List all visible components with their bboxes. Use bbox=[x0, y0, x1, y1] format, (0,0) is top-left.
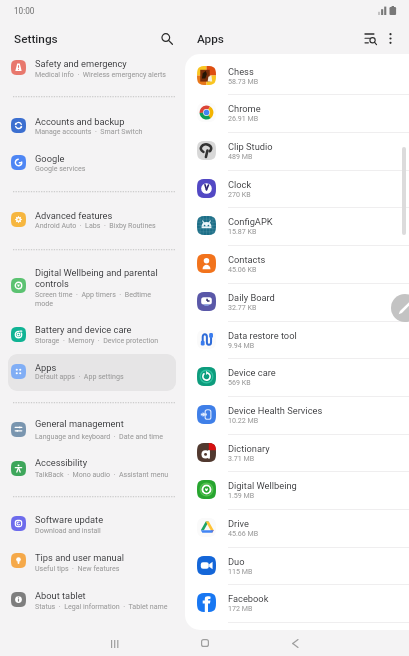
staticText: 58.73 MB bbox=[228, 77, 259, 85]
button[interactable]: Chrome bbox=[185, 94, 409, 132]
button[interactable]: Google bbox=[8, 149, 176, 175]
staticText: Dictionary bbox=[228, 443, 270, 454]
staticText: Download and install bbox=[35, 526, 101, 534]
button[interactable]: ConfigAPK bbox=[185, 207, 409, 245]
staticText: Storage · Memory · Device protection bbox=[35, 336, 159, 344]
staticText: Digital Wellbeing bbox=[228, 480, 297, 491]
button[interactable]: Dictionary bbox=[185, 434, 409, 472]
button[interactable]: General management bbox=[8, 416, 176, 442]
staticText: 1.59 MB bbox=[228, 491, 255, 499]
button[interactable]: Drive bbox=[185, 509, 409, 547]
staticText: Apps bbox=[197, 32, 224, 46]
staticText: 32.77 KB bbox=[228, 303, 257, 311]
staticText: About tablet bbox=[35, 590, 86, 601]
staticText: Manage accounts · Smart Switch bbox=[35, 127, 143, 135]
button[interactable]: Recent apps bbox=[107, 636, 123, 652]
staticText: 45.06 KB bbox=[228, 265, 257, 273]
staticText: Data restore tool bbox=[228, 330, 297, 341]
button[interactable]: Battery and device care bbox=[8, 321, 176, 347]
button[interactable]: Software update bbox=[8, 511, 176, 537]
staticText: Drive bbox=[228, 518, 249, 529]
staticText: Accounts and backup bbox=[35, 116, 125, 127]
staticText: 489 MB bbox=[228, 152, 253, 160]
button[interactable]: Back bbox=[287, 635, 303, 651]
staticText: Daily Board bbox=[228, 292, 275, 303]
staticText: 10:00 bbox=[14, 6, 35, 16]
button[interactable]: Facebook bbox=[185, 584, 409, 622]
button[interactable]: Home bbox=[197, 635, 213, 651]
staticText: Chess bbox=[228, 66, 254, 77]
staticText: 9.94 MB bbox=[228, 341, 255, 349]
staticText: 569 KB bbox=[228, 378, 251, 386]
button[interactable]: Duo bbox=[185, 547, 409, 585]
staticText: 45.66 MB bbox=[228, 529, 259, 537]
staticText: Screen time · App timers · Bedtime mode bbox=[35, 290, 151, 308]
staticText: Default apps · App settings bbox=[35, 372, 124, 380]
staticText: Battery and device care bbox=[35, 324, 132, 335]
staticText: Language and keyboard · Date and time bbox=[35, 432, 164, 440]
staticText: Useful tips · New features bbox=[35, 564, 120, 572]
staticText: 115 MB bbox=[228, 567, 253, 575]
staticText: 15.87 KB bbox=[228, 227, 257, 235]
button[interactable]: Data restore tool bbox=[185, 321, 409, 359]
button[interactable]: Edit bbox=[391, 294, 409, 322]
button[interactable]: Daily Board bbox=[185, 283, 409, 321]
staticText: Contacts bbox=[228, 254, 266, 265]
staticText: 270 KB bbox=[228, 190, 251, 198]
staticText: Medical info · Wireless emergency alerts bbox=[35, 70, 166, 78]
staticText: Facebook bbox=[228, 593, 269, 604]
staticText: Accessibility bbox=[35, 457, 88, 468]
button[interactable]: Search bbox=[156, 28, 177, 49]
button[interactable]: Tips and user manual bbox=[8, 548, 176, 574]
staticText: ConfigAPK bbox=[228, 216, 273, 227]
button[interactable]: Clock bbox=[185, 170, 409, 208]
button[interactable]: Accounts and backup bbox=[8, 112, 176, 138]
button[interactable]: Device Health Services bbox=[185, 396, 409, 434]
staticText: Tips and user manual bbox=[35, 552, 124, 563]
staticText: 3.71 MB bbox=[228, 454, 255, 462]
button[interactable]: Digital Wellbeing and parental controls bbox=[8, 264, 176, 312]
button[interactable]: Search apps bbox=[360, 28, 381, 49]
staticText: Digital Wellbeing and parental controls bbox=[35, 267, 158, 289]
staticText: Device Health Services bbox=[228, 405, 323, 416]
staticText: General management bbox=[35, 418, 124, 429]
staticText: Advanced features bbox=[35, 210, 113, 221]
button[interactable]: Device care bbox=[185, 358, 409, 396]
staticText: TalkBack · Mono audio · Assistant menu bbox=[35, 470, 169, 478]
staticText: Settings bbox=[14, 32, 58, 46]
staticText: 10.22 MB bbox=[228, 416, 259, 424]
button[interactable]: Contacts bbox=[185, 245, 409, 283]
staticText: Device care bbox=[228, 367, 276, 378]
staticText: Google services bbox=[35, 164, 86, 172]
button[interactable]: Apps bbox=[8, 354, 176, 391]
staticText: 26.91 MB bbox=[228, 114, 259, 122]
button[interactable]: About tablet bbox=[8, 586, 176, 612]
button[interactable]: Accessibility bbox=[8, 454, 176, 480]
staticText: Clock bbox=[228, 179, 252, 190]
staticText: Apps bbox=[35, 362, 57, 373]
staticText: Google bbox=[35, 153, 65, 164]
staticText: Software update bbox=[35, 514, 104, 525]
staticText: 172 MB bbox=[228, 604, 253, 612]
button[interactable]: Advanced features bbox=[8, 206, 176, 232]
staticText: Safety and emergency bbox=[35, 58, 127, 69]
button[interactable]: Clip Studio bbox=[185, 132, 409, 170]
staticText: Clip Studio bbox=[228, 141, 273, 152]
button[interactable]: Digital Wellbeing bbox=[185, 471, 409, 509]
staticText: Duo bbox=[228, 556, 245, 567]
staticText: Chrome bbox=[228, 103, 261, 114]
button[interactable]: Safety and emergency bbox=[8, 55, 176, 81]
button[interactable]: More options bbox=[380, 28, 401, 49]
staticText: Android Auto · Labs · Bixby Routines bbox=[35, 221, 156, 229]
staticText: Status · Legal information · Tablet name bbox=[35, 602, 168, 610]
button[interactable]: Chess bbox=[185, 57, 409, 95]
